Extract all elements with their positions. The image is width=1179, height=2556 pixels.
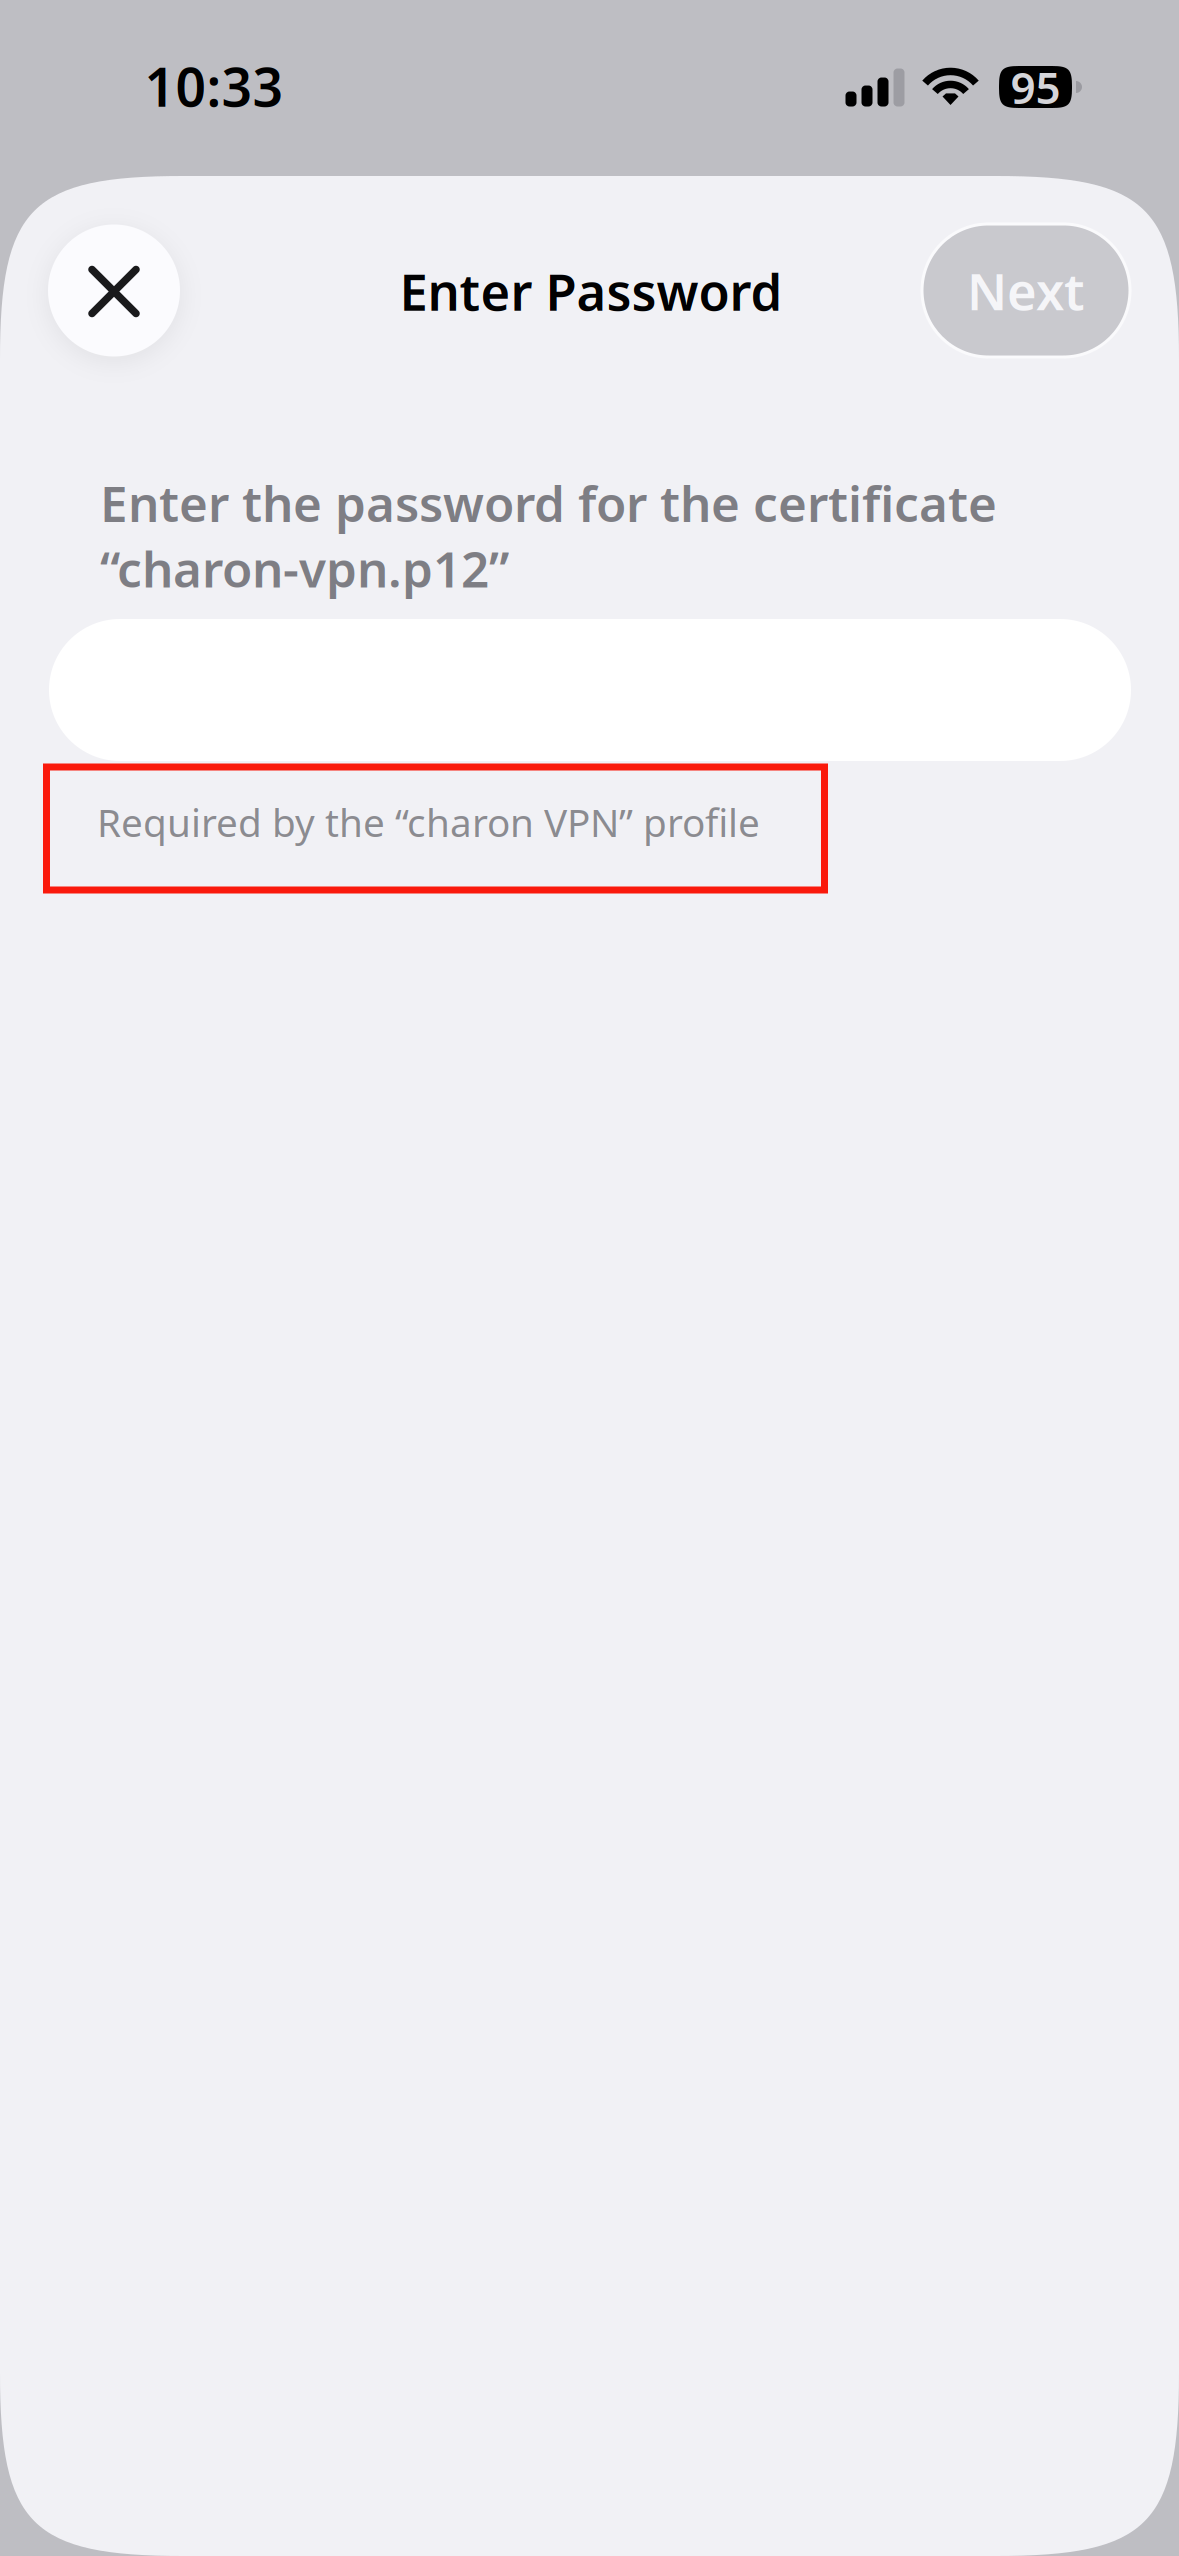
staticText: Required by the “charon VPN” profile	[97, 796, 760, 848]
button[interactable]: Next	[920, 222, 1131, 358]
staticText: Enter Password	[399, 257, 782, 325]
staticText: 95	[1010, 58, 1060, 116]
staticText: Enter the password for the certificate “…	[100, 470, 997, 601]
staticText: Next	[967, 257, 1085, 324]
button[interactable]: Close	[48, 224, 180, 356]
staticText: 10:33	[144, 51, 283, 121]
